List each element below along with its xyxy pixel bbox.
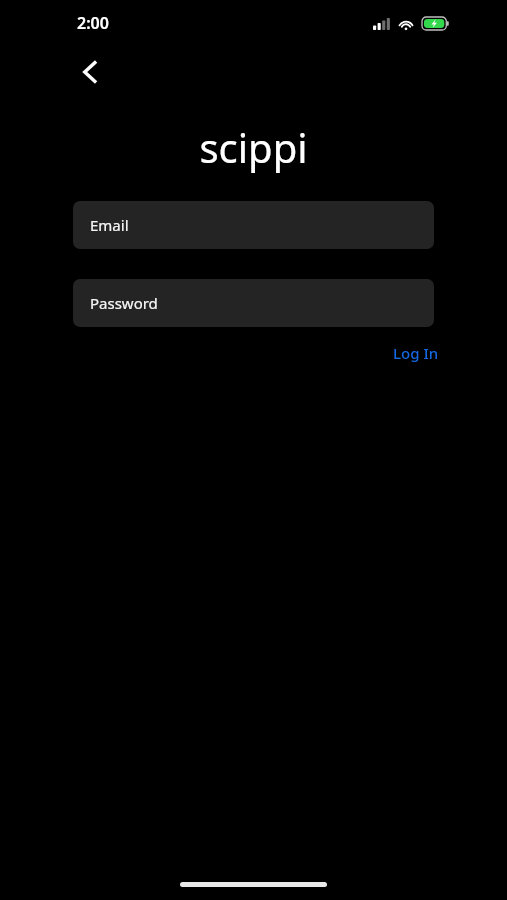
staticText: Email xyxy=(90,215,129,235)
button[interactable]: Email xyxy=(73,201,434,249)
button[interactable]: Password xyxy=(73,279,434,327)
staticText: 2:00 xyxy=(77,12,109,34)
button[interactable]: Back xyxy=(66,48,114,96)
staticText: Password xyxy=(90,293,158,313)
staticText: Log In xyxy=(393,343,439,363)
button[interactable]: Log In xyxy=(387,335,445,371)
staticText: scippi xyxy=(0,120,507,174)
